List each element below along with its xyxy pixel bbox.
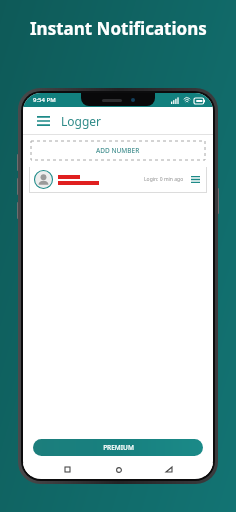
staticText: Instant Notifications: [30, 17, 207, 40]
button[interactable]: PREMIUM: [33, 439, 203, 456]
staticText: Login: 0 min ago: [144, 176, 184, 183]
button[interactable]: Open navigation menu: [33, 111, 53, 131]
staticText: 9:54 PM: [33, 96, 56, 104]
button[interactable]: Item options: [189, 173, 202, 186]
button[interactable]: Recent apps: [61, 463, 74, 476]
staticText: PREMIUM: [103, 443, 134, 452]
button[interactable]: ADD NUMBER: [31, 141, 205, 160]
staticText: ADD NUMBER: [96, 146, 140, 155]
button[interactable]: Login: 0 min ago: [29, 167, 207, 192]
button[interactable]: Home: [112, 463, 125, 476]
staticText: Logger: [61, 113, 102, 129]
button[interactable]: Back: [162, 463, 175, 476]
